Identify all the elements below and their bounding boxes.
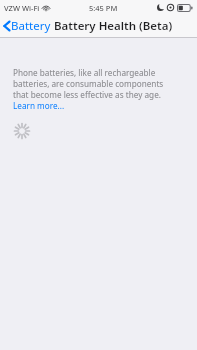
staticText: Phone batteries, like all rechargeable b… [13,67,179,111]
staticText: VZW Wi-Fi [4,3,40,13]
staticText: Battery [11,18,51,34]
staticText: 5:45 PM [89,3,118,13]
staticText: Battery Health (Beta) [54,18,173,34]
other: Back [3,20,10,32]
button[interactable]: Back [0,16,55,36]
